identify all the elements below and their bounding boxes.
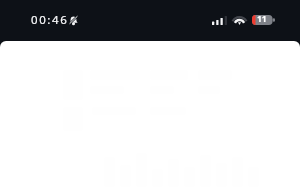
button[interactable]: Clock, notifications silenced <box>31 12 78 28</box>
button[interactable]: System status: signal, wifi, battery 11 … <box>212 15 275 25</box>
staticText: 11 <box>257 13 267 23</box>
staticText: 00:46 <box>31 12 69 28</box>
button[interactable]: Content area <box>0 41 300 190</box>
